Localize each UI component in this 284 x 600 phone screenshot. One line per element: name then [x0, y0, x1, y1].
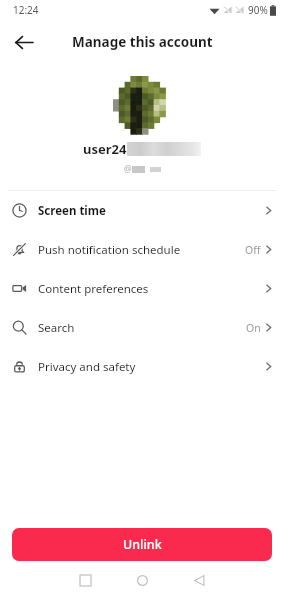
button[interactable]: Back [6, 24, 42, 60]
button[interactable]: Home [114, 561, 171, 600]
staticText: Search [38, 320, 75, 336]
button[interactable]: Screen time [0, 191, 284, 230]
button[interactable]: Search [0, 308, 284, 347]
staticText: Off [245, 243, 261, 257]
staticText: Push notification schedule [38, 242, 181, 258]
button[interactable]: Content preferences [0, 269, 284, 308]
staticText: 90% [248, 3, 268, 17]
staticText: Manage this account [72, 33, 213, 51]
staticText: user24 [83, 140, 127, 158]
staticText: Unlink [123, 536, 162, 553]
button[interactable]: Back [171, 561, 228, 600]
button[interactable]: Push notification schedule [0, 230, 284, 269]
button[interactable]: Recent apps [57, 561, 114, 600]
staticText: Privacy and safety [38, 359, 136, 375]
staticText: Content preferences [38, 281, 149, 297]
staticText: @ [124, 163, 132, 175]
button[interactable]: Unlink [12, 528, 272, 561]
staticText: Screen time [38, 203, 106, 219]
staticText: 12:24 [13, 3, 39, 17]
button[interactable]: Privacy and safety [0, 347, 284, 386]
staticText: On [246, 321, 261, 335]
